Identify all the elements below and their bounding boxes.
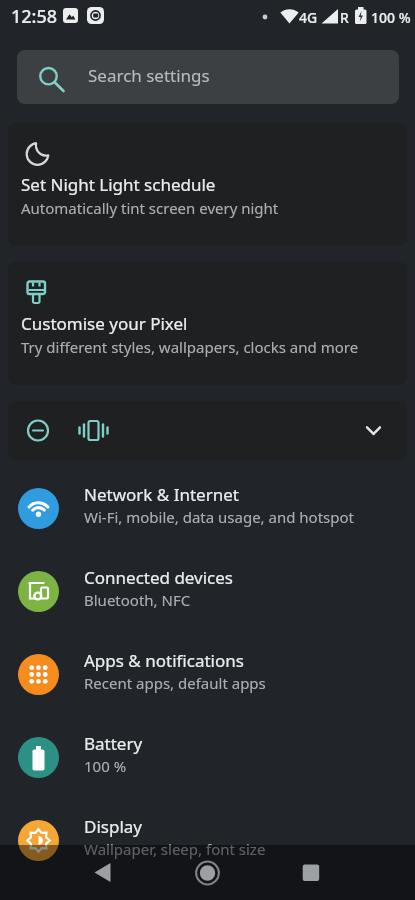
staticText: Customise your Pixel [21,312,188,335]
button[interactable]: Display [0,799,415,882]
staticText: Try different styles, wallpapers, clocks… [21,337,359,357]
staticText: 100 % [371,8,411,27]
button[interactable] [0,845,139,900]
staticText: Connected devices [84,566,234,589]
button[interactable]: Battery [0,716,415,799]
staticText: Battery [84,732,143,755]
staticText: Automatically tint screen every night [21,198,279,218]
button[interactable]: Connected devices [0,550,415,633]
staticText: Apps & notifications [84,649,244,672]
staticText: 100 % [84,756,127,776]
button[interactable]: Customise your Pixel [8,262,407,385]
staticText: R [340,8,349,27]
button[interactable] [139,845,277,900]
button[interactable]: Search settings [17,50,399,104]
staticText: Recent apps, default apps [84,673,266,693]
button[interactable]: Set Night Light schedule [8,123,407,246]
button[interactable] [8,401,407,460]
button[interactable]: Network & Internet [0,467,415,550]
staticText: Wallpaper, sleep, font size [84,839,266,859]
staticText: Bluetooth, NFC [84,590,191,610]
staticText: Display [84,815,142,838]
staticText: Set Night Light schedule [21,173,216,196]
staticText: 12:58 [11,4,58,29]
staticText: 4G [299,8,318,27]
staticText: Wi-Fi, mobile, data usage, and hotspot [84,507,354,527]
staticText: Network & Internet [84,483,239,506]
button[interactable]: Apps & notifications [0,633,415,716]
button[interactable] [277,845,415,900]
staticText: Search settings [88,64,210,87]
